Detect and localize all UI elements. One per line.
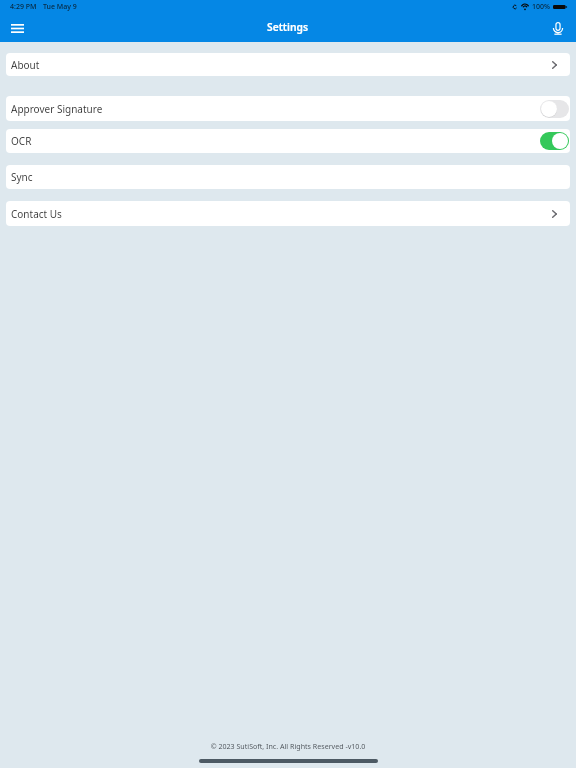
staticText: Settings [267,20,309,34]
button[interactable]: Open navigation menu [5,16,29,40]
button[interactable]: Sync [6,165,570,189]
staticText: 4:29 PM [10,2,37,12]
button[interactable]: About [6,53,570,76]
button[interactable]: Switch on [540,132,569,150]
staticText: © 2023 SutiSoft, Inc. All Rights Reserve… [0,741,576,751]
button[interactable]: Voice search [547,17,569,39]
staticText: Contact Us [11,207,62,221]
staticText: 100% [532,2,550,12]
button[interactable]: Switch off [540,100,569,118]
staticText: Sync [11,170,33,184]
staticText: About [11,58,40,72]
staticText: OCR [11,134,32,148]
button[interactable]: Approver Signature [6,96,570,121]
button[interactable]: Contact Us [6,201,570,226]
staticText: Tue May 9 [43,2,77,12]
staticText: Approver Signature [11,102,103,116]
button[interactable]: OCR [6,129,570,153]
